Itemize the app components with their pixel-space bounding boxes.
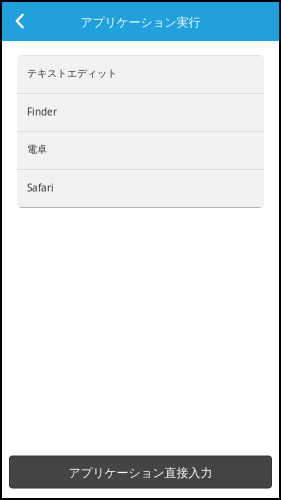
staticText: Safari	[27, 181, 54, 194]
staticText: アプリケーション直接入力	[68, 465, 212, 480]
button[interactable]: Safari	[17, 170, 264, 207]
staticText: Finder	[27, 105, 57, 118]
button[interactable]: Finder	[17, 94, 264, 132]
staticText: アプリケーション実行	[80, 15, 200, 30]
button[interactable]: アプリケーション直接入力	[9, 456, 271, 488]
button[interactable]: 電卓	[17, 132, 264, 170]
button[interactable]: テキストエディット	[17, 56, 264, 94]
button[interactable]: Back	[2, 2, 38, 41]
staticText: 電卓	[27, 143, 47, 156]
staticText: テキストエディット	[27, 67, 117, 80]
